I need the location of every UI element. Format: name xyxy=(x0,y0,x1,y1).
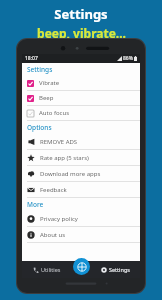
staticText: Rate app (5 stars) xyxy=(40,154,89,162)
staticText: Settings xyxy=(27,65,53,74)
button[interactable]: Settings xyxy=(91,261,140,278)
button[interactable]: About us xyxy=(22,227,140,242)
staticText: 86% xyxy=(123,55,133,62)
button[interactable]: Rate app (5 stars) xyxy=(22,150,140,165)
staticText: More xyxy=(27,200,44,209)
button[interactable]: REMOVE ADS xyxy=(22,134,140,149)
staticText: Settings xyxy=(54,5,108,23)
button[interactable]: Download more apps xyxy=(22,166,140,181)
staticText: About us xyxy=(40,231,66,239)
button[interactable]: Feedback xyxy=(22,182,140,197)
button[interactable]: Vibrate xyxy=(22,76,140,90)
staticText: Utilities xyxy=(41,266,61,273)
button[interactable]: Open app xyxy=(73,258,90,275)
staticText: Vibrate xyxy=(39,79,60,87)
staticText: Beep xyxy=(39,94,54,102)
staticText: beep, vibrate... xyxy=(37,25,126,41)
button[interactable]: Beep xyxy=(22,91,140,105)
staticText: Privacy policy xyxy=(40,215,78,223)
button[interactable]: Privacy policy xyxy=(22,211,140,226)
staticText: 18:07 xyxy=(25,55,38,62)
button[interactable]: Auto focus xyxy=(22,106,140,120)
staticText: Options xyxy=(27,123,52,132)
staticText: Download more apps xyxy=(40,170,101,178)
staticText: Feedback xyxy=(40,186,67,194)
staticText: REMOVE ADS xyxy=(40,138,78,146)
button[interactable]: Utilities xyxy=(22,261,71,278)
staticText: Auto focus xyxy=(39,109,70,117)
staticText: Settings xyxy=(109,266,130,273)
